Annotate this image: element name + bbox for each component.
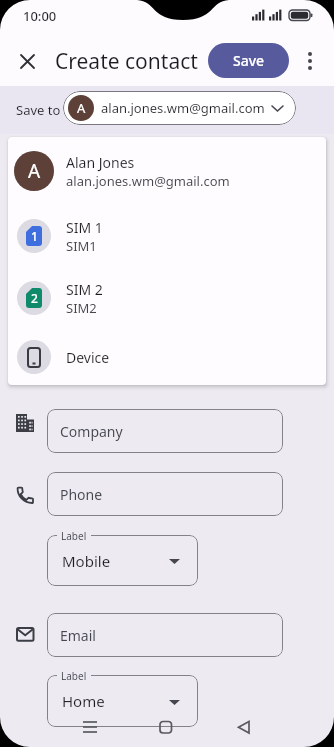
button[interactable] <box>15 49 39 73</box>
staticText: Alan Jones <box>66 153 135 172</box>
staticText: Label <box>61 529 87 543</box>
staticText: Save to <box>16 101 61 119</box>
staticText: Mobile <box>62 551 111 571</box>
staticText: Phone <box>60 485 103 504</box>
staticText: SIM 1 <box>66 218 103 237</box>
staticText: Device <box>66 348 110 367</box>
button[interactable]: 2 <box>8 267 326 329</box>
staticText: alan.jones.wm@gmail.com <box>101 99 265 117</box>
button[interactable]: Device <box>8 329 326 385</box>
button[interactable] <box>298 49 322 73</box>
staticText: SIM 2 <box>66 280 103 299</box>
staticText: Email <box>60 626 96 645</box>
staticText: Create contact <box>55 47 198 76</box>
staticText: Save <box>233 51 265 70</box>
staticText: alan.jones.wm@gmail.com <box>66 172 230 190</box>
staticText: A <box>28 158 41 184</box>
staticText: 10:00 <box>23 7 57 23</box>
staticText: SIM1 <box>66 237 97 255</box>
staticText: 2 <box>31 290 38 306</box>
staticText: Label <box>61 669 87 683</box>
button[interactable]: 1 <box>8 205 326 267</box>
staticText: Home <box>62 691 105 711</box>
staticText: Company <box>60 422 123 441</box>
button[interactable]: A <box>8 137 326 205</box>
button[interactable]: Home <box>47 675 198 727</box>
button[interactable]: Phone <box>47 472 283 516</box>
button[interactable]: A <box>63 91 296 125</box>
button[interactable]: Save <box>208 43 289 78</box>
staticText: A <box>77 99 86 117</box>
staticText: SIM2 <box>66 299 97 317</box>
button[interactable]: Email <box>47 613 283 657</box>
button[interactable]: Company <box>47 409 283 453</box>
staticText: 1 <box>31 228 38 244</box>
button[interactable]: Mobile <box>47 535 198 586</box>
